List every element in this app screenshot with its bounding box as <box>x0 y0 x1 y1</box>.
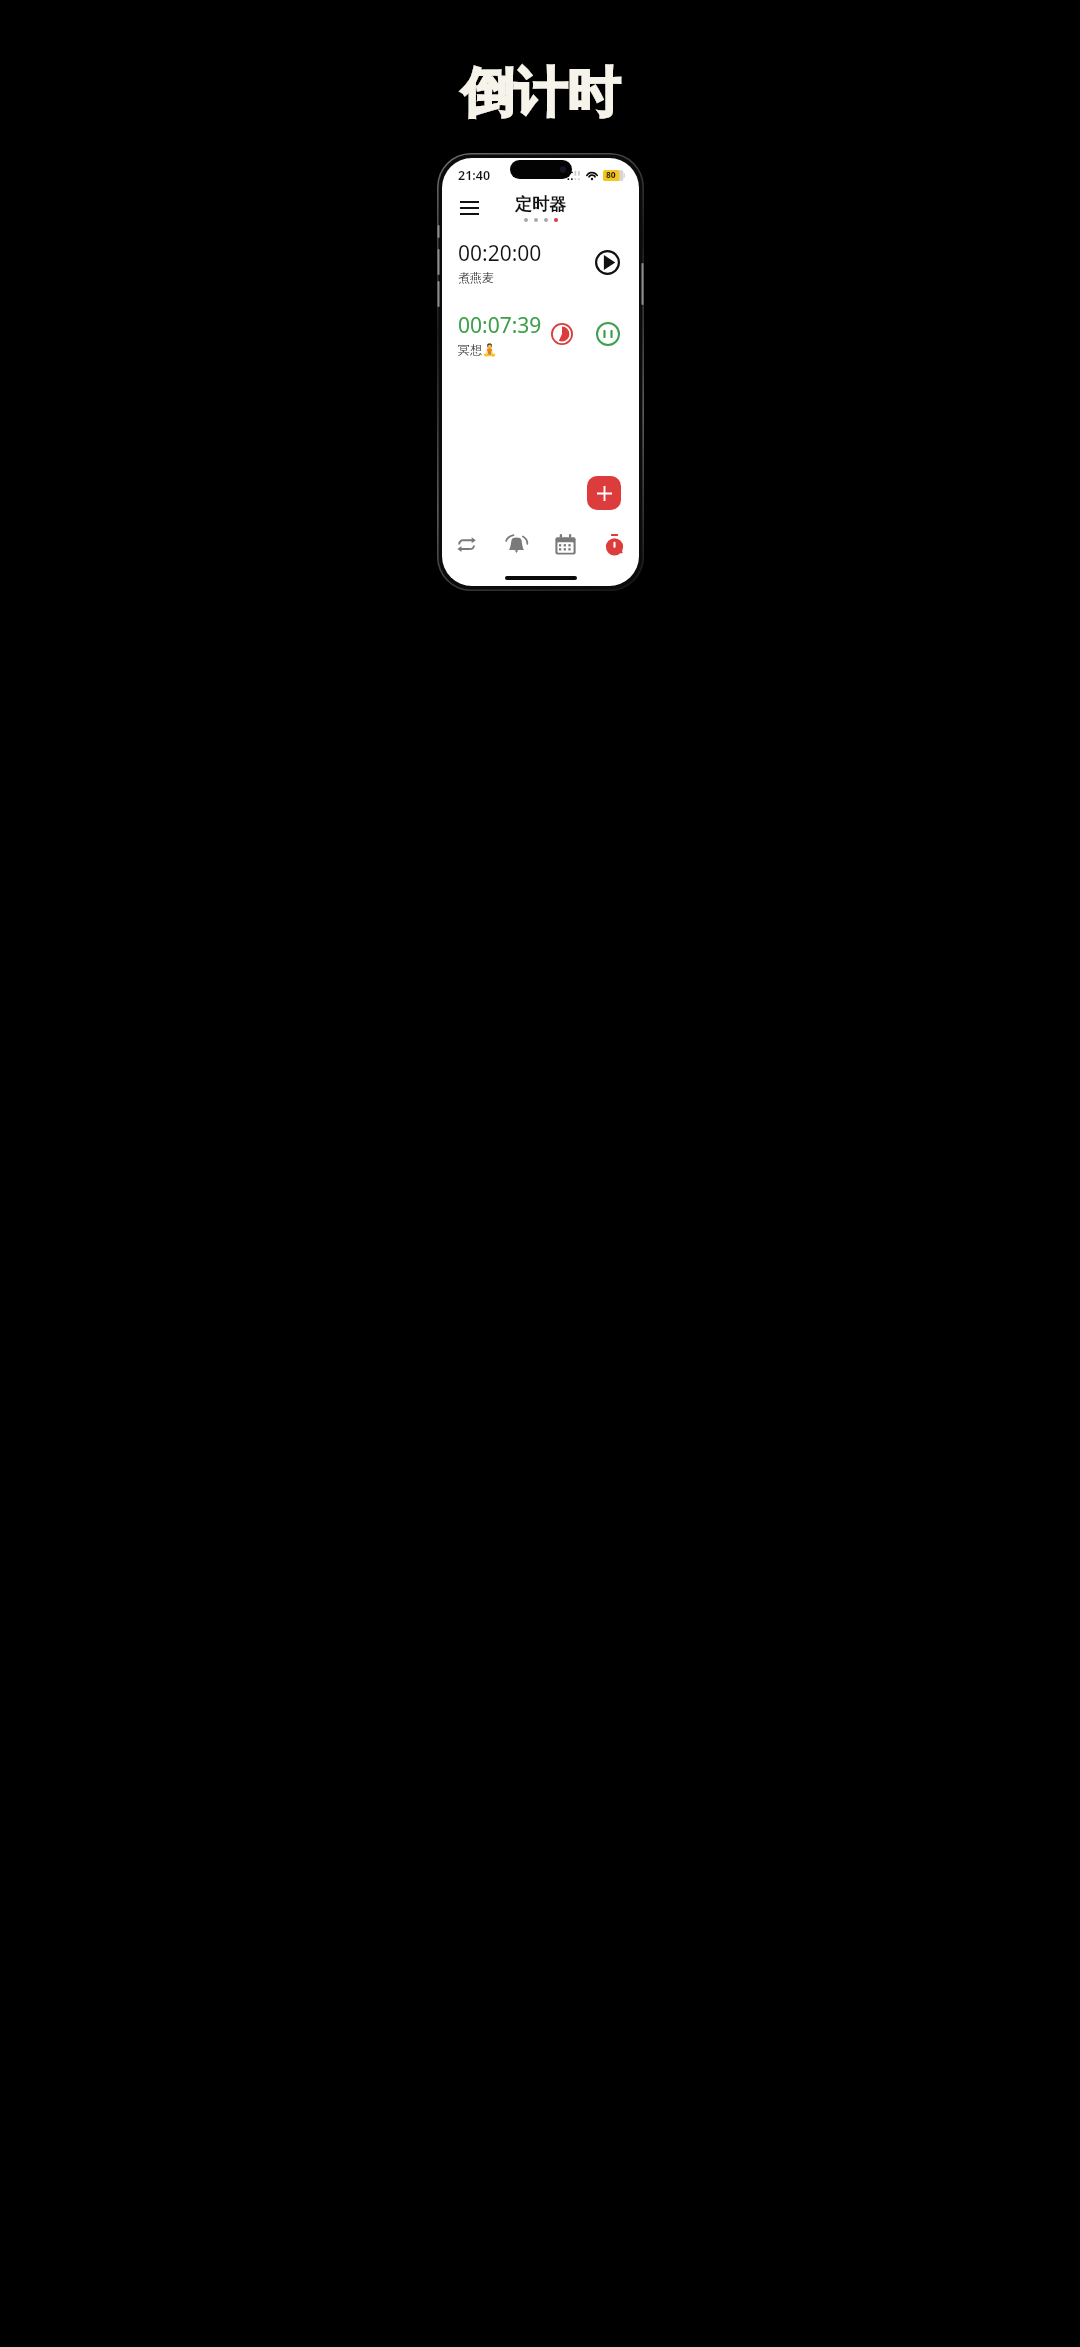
button[interactable]: Add timer <box>587 476 621 510</box>
staticText: 00:20:00 <box>458 239 542 268</box>
button[interactable]: Timer progress <box>545 317 579 351</box>
button[interactable]: Timers <box>590 520 639 568</box>
button[interactable]: Pause <box>591 317 625 351</box>
button[interactable]: 00:20:00 <box>442 236 639 288</box>
staticText: 00:07:39 <box>458 311 542 340</box>
button[interactable]: Alarms <box>492 520 541 568</box>
staticText: 冥想🧘 <box>458 342 497 357</box>
staticText: 倒计时 <box>461 60 620 127</box>
button[interactable]: Repeat <box>442 520 492 568</box>
staticText: 煮燕麦 <box>458 270 494 285</box>
button[interactable]: 00:07:39 <box>442 308 639 360</box>
staticText: 80 <box>606 169 616 181</box>
button[interactable]: Menu <box>452 191 486 225</box>
staticText: 21:40 <box>458 167 491 184</box>
staticText: 定时器 <box>515 194 566 215</box>
button[interactable]: Calendar <box>541 520 590 568</box>
button[interactable]: Start <box>589 244 625 280</box>
